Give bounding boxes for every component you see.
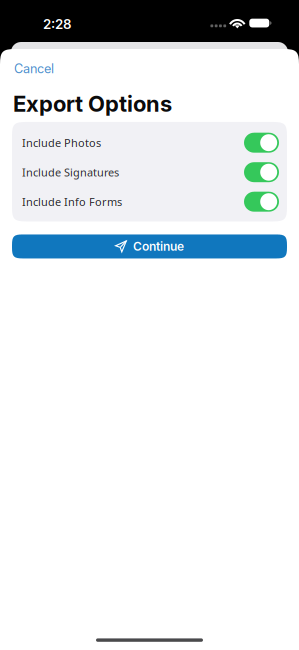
staticText: Cancel [14,61,54,76]
button[interactable]: Continue [12,234,287,258]
staticText: Continue [133,239,184,254]
button[interactable]: Include Photos [12,128,287,157]
staticText: Export Options [13,90,172,117]
staticText: Include Signatures [22,165,119,180]
button[interactable]: Include Info Forms [12,187,287,216]
staticText: Include Info Forms [22,194,122,209]
button[interactable]: Cancel [0,49,64,80]
staticText: 2:28 [43,16,72,32]
staticText: Include Photos [22,135,101,150]
button[interactable]: Include Signatures [12,157,287,187]
